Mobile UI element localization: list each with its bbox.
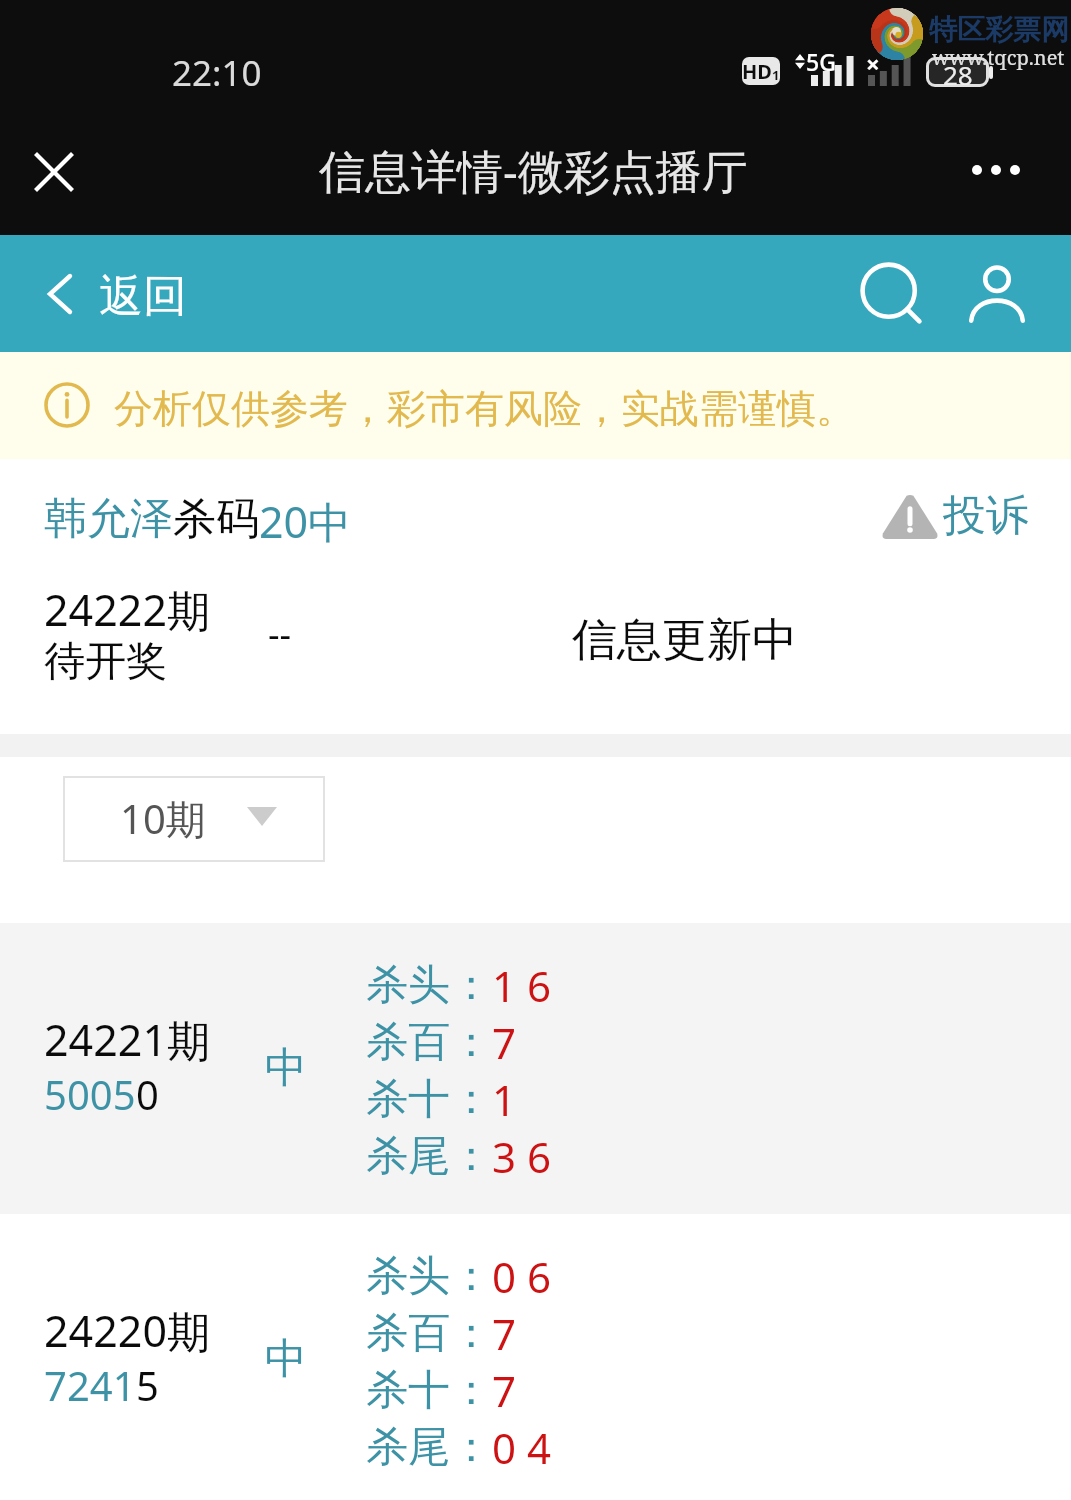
staticText: 杀百： (366, 1307, 492, 1360)
staticText: 韩允泽 (44, 492, 173, 546)
staticText: 7 (492, 1305, 517, 1362)
button[interactable]: 返回 (48, 251, 187, 337)
staticText: 杀尾： (366, 1130, 492, 1183)
staticText: 信息更新中 (572, 612, 797, 669)
staticText: 22:10 (172, 49, 262, 97)
staticText: 7 (492, 1362, 517, 1419)
staticText: 5 (136, 1358, 159, 1412)
staticText: 10期 (120, 791, 206, 846)
staticText: 3 6 (492, 1128, 551, 1185)
staticText: 0 (136, 1067, 159, 1121)
staticText: 返回 (99, 269, 187, 324)
staticText: 1 (492, 1071, 517, 1128)
staticText: 1 (772, 66, 780, 84)
staticText: www.tqcp.net (932, 44, 1065, 71)
staticText: 待开奖 (44, 636, 167, 688)
staticText: 24222期 (44, 580, 210, 639)
staticText: 中 (265, 1042, 307, 1095)
staticText: 1 6 (492, 957, 551, 1014)
staticText: 7241 (44, 1358, 136, 1412)
staticText: 24221期 (44, 1010, 210, 1069)
staticText: 杀码 (173, 492, 259, 546)
staticText: 杀十： (366, 1073, 492, 1126)
button[interactable]: Search (852, 254, 930, 332)
staticText: 中 (265, 1333, 307, 1386)
staticText: 杀尾： (366, 1421, 492, 1474)
staticText: 杀十： (366, 1364, 492, 1417)
staticText: 20中 (259, 492, 352, 551)
staticText: 28 (943, 57, 973, 87)
staticText: 0 4 (492, 1419, 551, 1476)
staticText: 7 (492, 1014, 517, 1071)
button[interactable]: Account (958, 255, 1036, 333)
staticText: HD (742, 58, 772, 85)
staticText: 24220期 (44, 1301, 210, 1360)
staticText: 0 6 (492, 1248, 551, 1305)
staticText: 分析仅供参考，彩市有风险，实战需谨慎。 (114, 384, 855, 433)
button[interactable]: Close (14, 132, 94, 212)
staticText: 5005 (44, 1067, 136, 1121)
button[interactable]: 投诉 (882, 489, 1029, 543)
staticText: -- (268, 609, 292, 658)
button[interactable]: 10期 (63, 776, 325, 862)
button[interactable]: More options (948, 131, 1044, 209)
staticText: 信息详情-微彩点播厅 (319, 139, 748, 202)
button[interactable]: 24220期 (0, 1214, 1071, 1500)
staticText: 杀头： (366, 1250, 492, 1303)
staticText: 特区彩票网 (929, 12, 1069, 47)
button[interactable]: 24221期 (0, 923, 1071, 1214)
staticText: 杀头： (366, 959, 492, 1012)
staticText: 杀百： (366, 1016, 492, 1069)
staticText: 5G (806, 46, 836, 77)
staticText: 投诉 (943, 489, 1029, 543)
staticText: × (866, 47, 880, 80)
